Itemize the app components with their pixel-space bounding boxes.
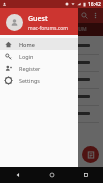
button[interactable]: Settings bbox=[0, 74, 78, 86]
button[interactable]: Back bbox=[0, 167, 35, 183]
staticText: Guest bbox=[28, 14, 48, 24]
staticText: Settings bbox=[19, 77, 40, 84]
button[interactable] bbox=[4, 75, 99, 92]
button[interactable]: More options bbox=[90, 10, 101, 21]
button[interactable]: Search bbox=[79, 10, 90, 21]
button[interactable] bbox=[4, 92, 99, 109]
staticText: Register bbox=[19, 65, 41, 72]
button[interactable]: Register bbox=[0, 62, 78, 74]
button[interactable] bbox=[4, 58, 99, 75]
staticText: 16:42 bbox=[88, 1, 101, 8]
staticText: FORUM bbox=[68, 26, 87, 33]
button[interactable]: New post bbox=[82, 146, 99, 163]
staticText: Home bbox=[19, 41, 35, 48]
button[interactable]: Recents bbox=[69, 167, 103, 183]
button[interactable]: Home bbox=[35, 167, 69, 183]
button[interactable]: Home bbox=[0, 38, 78, 50]
button[interactable]: FORUM bbox=[51, 23, 103, 36]
staticText: mac-forums.com bbox=[28, 25, 68, 32]
button[interactable]: RECENT bbox=[0, 23, 51, 36]
staticText: Login bbox=[19, 53, 34, 60]
button[interactable] bbox=[4, 109, 99, 126]
button[interactable]: Login bbox=[0, 50, 78, 62]
button[interactable] bbox=[4, 41, 99, 58]
staticText: RECENT bbox=[16, 26, 35, 33]
